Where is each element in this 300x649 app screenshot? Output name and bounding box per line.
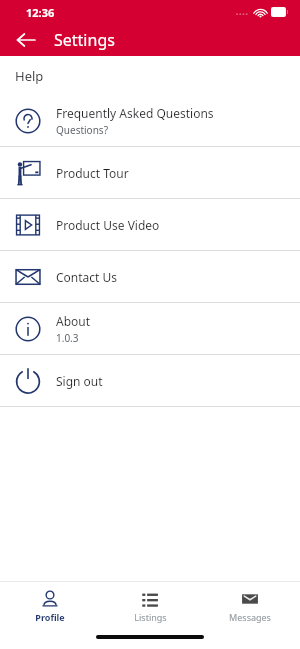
button[interactable]: Profile <box>0 582 100 630</box>
staticText: Listings <box>134 611 167 623</box>
staticText: 12:36 <box>26 5 55 20</box>
button[interactable]: Listings <box>100 582 200 630</box>
button[interactable]: Contact Us <box>0 251 300 303</box>
staticText: 1.0.3 <box>56 331 79 345</box>
button[interactable]: Product Use Video <box>0 199 300 251</box>
staticText: Contact Us <box>56 269 118 285</box>
staticText: Product Tour <box>56 165 129 181</box>
button[interactable]: Back <box>6 24 46 56</box>
staticText: Messages <box>229 611 271 623</box>
staticText: Sign out <box>56 373 103 389</box>
staticText: Help <box>15 67 44 85</box>
staticText: Product Use Video <box>56 217 160 233</box>
staticText: Frequently Asked Questions <box>56 105 214 121</box>
button[interactable]: About <box>0 303 300 355</box>
staticText: Settings <box>54 29 115 51</box>
staticText: Profile <box>35 611 65 623</box>
staticText: About <box>56 313 91 329</box>
button[interactable]: Messages <box>200 582 300 630</box>
button[interactable]: Sign out <box>0 355 300 407</box>
staticText: Questions? <box>56 123 108 137</box>
button[interactable]: Product Tour <box>0 147 300 199</box>
button[interactable]: Frequently Asked Questions <box>0 95 300 147</box>
